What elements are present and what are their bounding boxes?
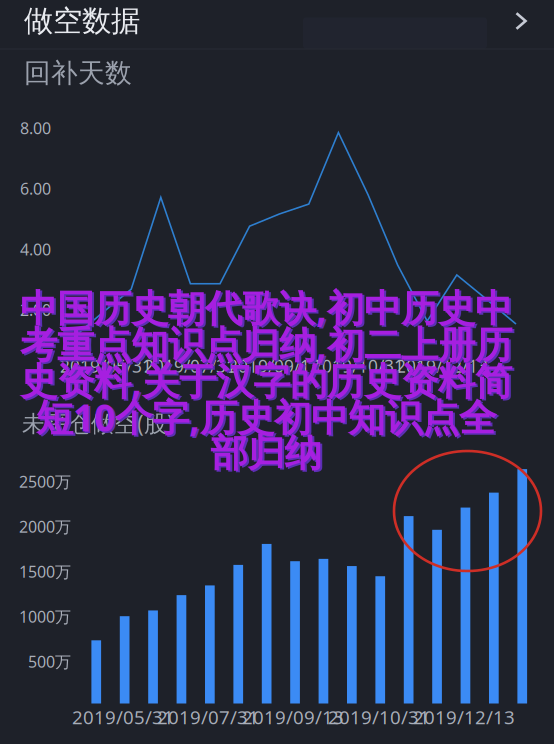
staticText: 短10个字,历史初中知识点全	[36, 392, 496, 442]
staticText: 部归纳	[212, 432, 323, 478]
staticText: 中国历史朝代歌诀,初中历史中	[20, 283, 512, 332]
staticText: 1000万	[19, 606, 71, 627]
staticText: 部归纳	[210, 430, 321, 476]
staticText: 4.00	[20, 239, 51, 260]
staticText: 500万	[28, 651, 71, 672]
staticText: 2019/07/31	[157, 705, 259, 729]
staticText: 2.00	[20, 299, 51, 320]
staticText: 中国历史朝代歌诀,初中历史中	[22, 284, 514, 334]
staticText: 2019/10/31	[312, 354, 404, 377]
staticText: 考重点知识点归纳,初二上册历	[20, 319, 512, 369]
staticText: 2019/12/13	[413, 705, 515, 729]
staticText: 8.00	[20, 117, 51, 139]
staticText: 2500万	[19, 471, 71, 492]
staticText: 史资料,关于汉字的历史资料简	[20, 356, 512, 405]
staticText: 做空数据	[24, 3, 140, 39]
staticText: 2019/10/31	[328, 705, 430, 729]
staticText: 2019/12/13	[396, 354, 488, 377]
staticText: 回补天数	[24, 57, 132, 89]
staticText: 2019/05/31	[72, 705, 174, 729]
staticText: 6.00	[20, 178, 51, 199]
button[interactable]: 做空数据	[0, 0, 554, 49]
staticText: 2000万	[19, 516, 71, 537]
staticText: 考重点知识点归纳,初二上册历	[22, 321, 514, 370]
staticText: 2019/05/31	[60, 354, 152, 377]
staticText: 史资料,关于汉字的历史资料简	[22, 357, 514, 407]
staticText: 2019/09/13	[228, 354, 320, 377]
staticText: 2019/09/13	[242, 705, 344, 729]
staticText: 1500万	[19, 561, 71, 582]
staticText: 2019/07/31	[144, 354, 236, 377]
staticText: 短10个字,历史初中知识点全	[38, 394, 498, 443]
staticText: 未平仓做空(股)	[22, 408, 174, 438]
